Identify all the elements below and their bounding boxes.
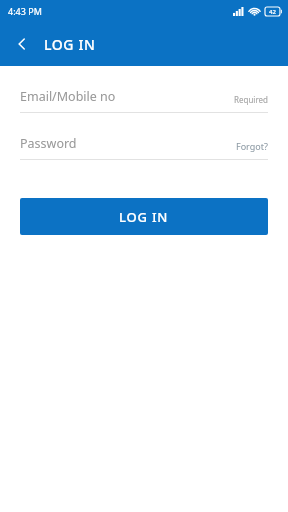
- button[interactable]: Email/Mobile no: [20, 88, 268, 113]
- staticText: 4:43 PM: [8, 5, 42, 17]
- button[interactable]: Password: [20, 135, 268, 160]
- button[interactable]: LOG IN: [20, 198, 268, 235]
- staticText: Password: [20, 135, 236, 152]
- button[interactable]: Back: [8, 30, 36, 58]
- staticText: 42: [269, 8, 276, 16]
- staticText: LOG IN: [44, 35, 96, 54]
- staticText: Required: [234, 94, 268, 105]
- staticText: LOG IN: [119, 208, 169, 226]
- staticText: Forgot?: [236, 140, 268, 152]
- staticText: Email/Mobile no: [20, 88, 234, 105]
